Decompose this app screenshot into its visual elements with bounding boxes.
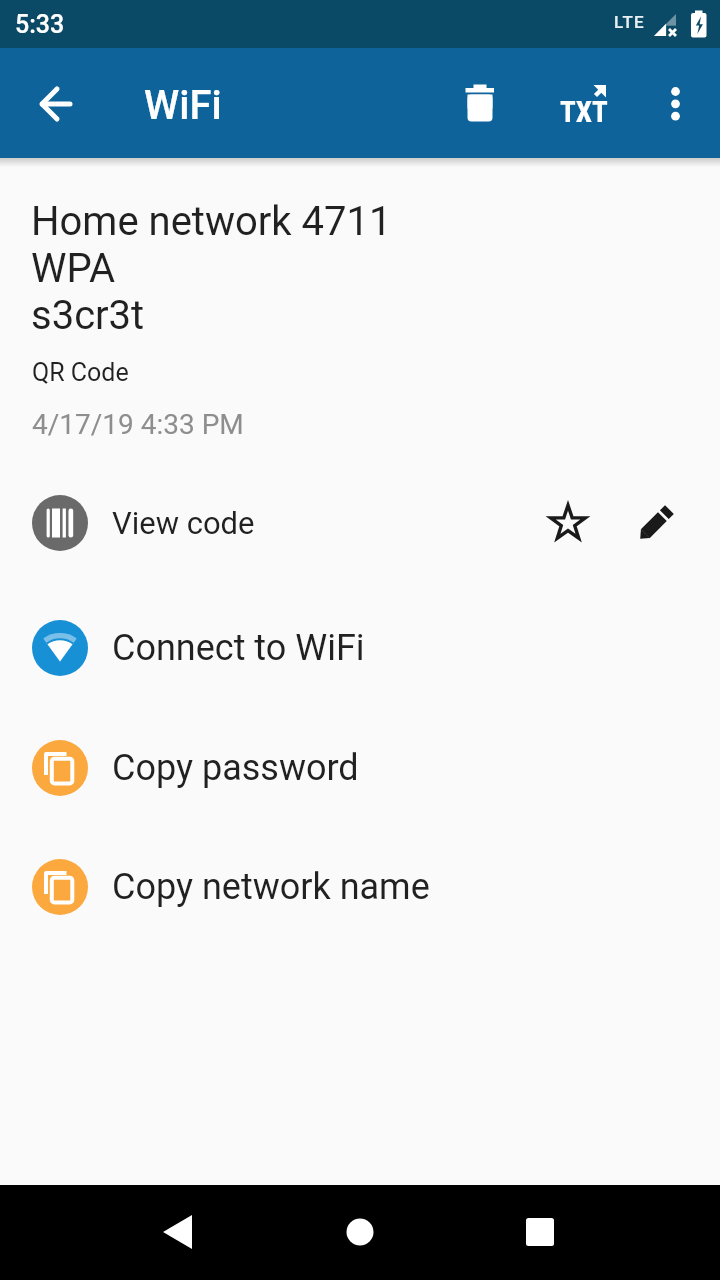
staticText: Copy password (112, 747, 359, 789)
button[interactable] (504, 1196, 576, 1268)
button[interactable] (144, 1196, 216, 1268)
staticText: TXT (560, 95, 608, 129)
button[interactable]: Copy password (0, 712, 720, 824)
staticText: WiFi (144, 82, 222, 129)
staticText: QR Code (32, 358, 129, 387)
staticText: Home network 4711 (31, 198, 392, 245)
staticText: Connect to WiFi (112, 627, 365, 669)
button[interactable]: Connect to WiFi (0, 592, 720, 704)
staticText: s3cr3t (31, 292, 145, 339)
button[interactable] (324, 1196, 396, 1268)
button[interactable] (540, 64, 628, 144)
button[interactable]: Copy network name (0, 831, 720, 943)
button[interactable] (636, 64, 716, 144)
button[interactable] (16, 64, 96, 144)
staticText: 4/17/19 4:33 PM (32, 408, 244, 441)
staticText: LTE (614, 12, 645, 32)
button[interactable] (440, 64, 520, 144)
staticText: Copy network name (112, 866, 430, 908)
staticText: View code (112, 505, 255, 541)
staticText: WPA (31, 245, 116, 292)
button[interactable] (627, 495, 683, 551)
button[interactable] (540, 495, 596, 551)
button[interactable]: View code (0, 467, 720, 579)
staticText: 5:33 (15, 10, 65, 39)
